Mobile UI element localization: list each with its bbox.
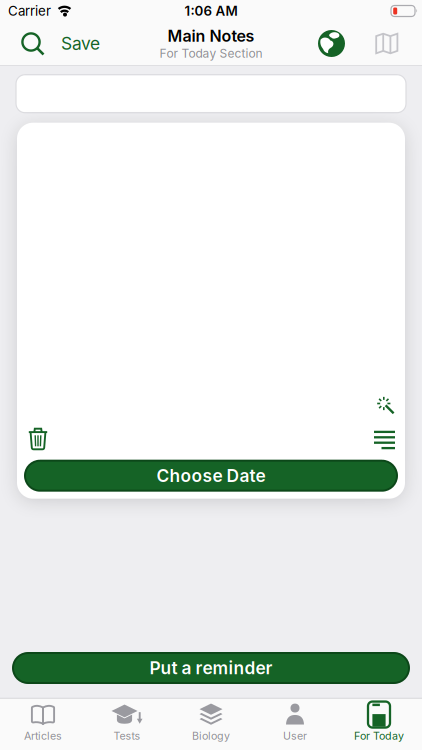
button[interactable]: Language xyxy=(318,30,345,57)
staticText: Biology xyxy=(192,730,230,742)
staticText: For Today xyxy=(354,730,404,742)
staticText: Carrier xyxy=(8,3,51,19)
staticText: Tests xyxy=(113,730,140,742)
staticText: Main Notes xyxy=(167,26,254,45)
staticText: 1:06 AM xyxy=(184,3,237,19)
staticText: Put a reminder xyxy=(149,658,272,678)
staticText: User xyxy=(283,730,307,742)
button[interactable]: Tests xyxy=(85,703,169,742)
staticText: For Today Section xyxy=(159,46,262,61)
button[interactable]: Search xyxy=(0,31,45,56)
staticText: Save xyxy=(61,33,100,54)
button[interactable]: Save xyxy=(45,33,100,54)
button[interactable]: Delete xyxy=(17,428,48,450)
button[interactable]: Biology xyxy=(169,703,253,742)
button[interactable]: Put a reminder xyxy=(13,653,409,683)
button[interactable]: Choose Date xyxy=(25,461,397,491)
staticText: Choose Date xyxy=(156,465,265,486)
button[interactable]: User xyxy=(253,703,337,742)
button[interactable]: Map xyxy=(345,32,422,54)
staticText: Articles xyxy=(24,730,62,742)
button[interactable]: For Today xyxy=(337,703,421,742)
button[interactable]: Magic xyxy=(377,397,395,415)
button[interactable]: Format xyxy=(374,431,395,450)
button[interactable]: Articles xyxy=(1,703,85,742)
